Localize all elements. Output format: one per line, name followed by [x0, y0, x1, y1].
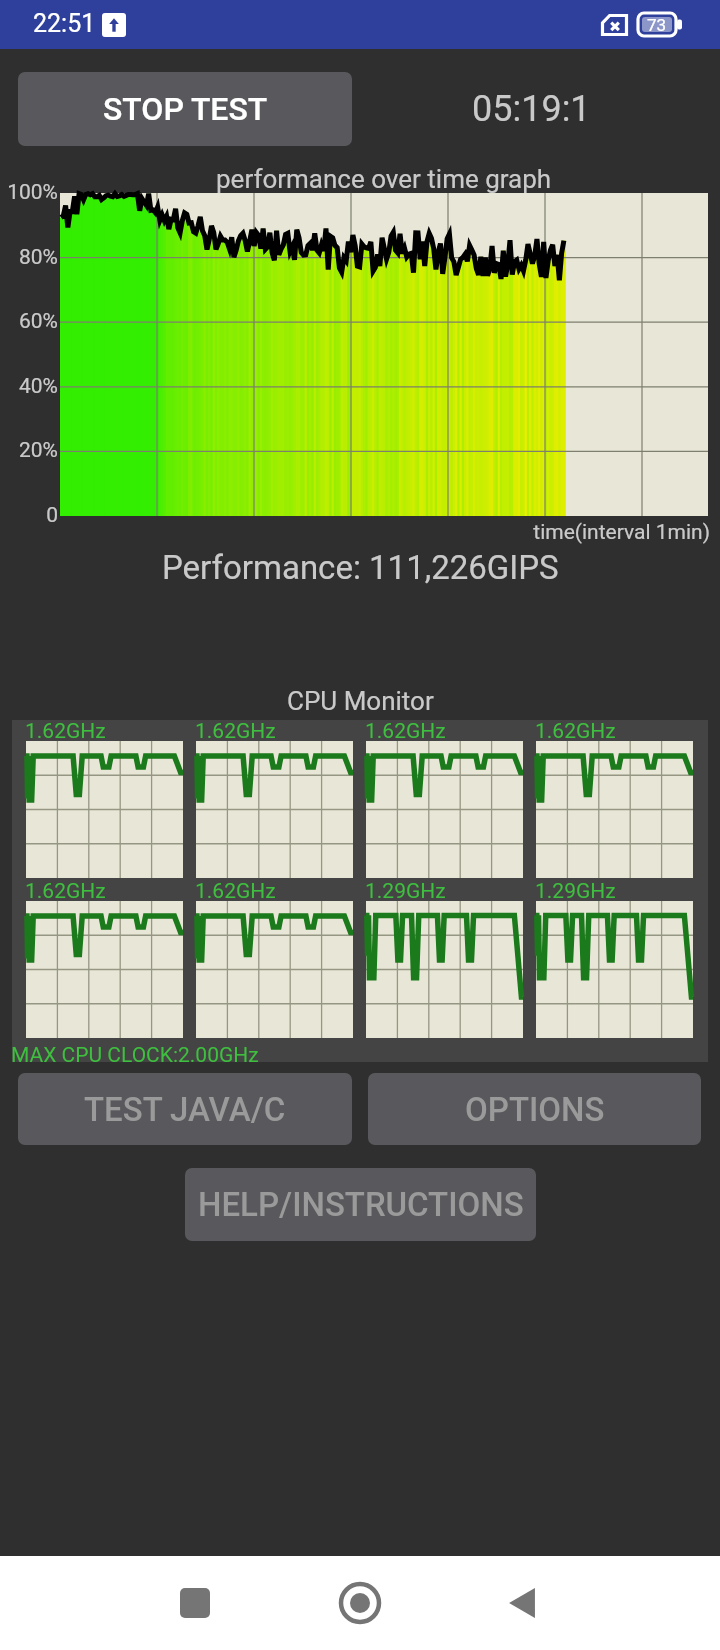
- staticText: 80%: [0, 245, 58, 270]
- button[interactable]: TEST JAVA/C: [18, 1073, 352, 1145]
- button[interactable]: Recents: [167, 1575, 223, 1631]
- staticText: 22:51: [33, 9, 96, 38]
- staticText: 20%: [0, 438, 58, 463]
- staticText: STOP TEST: [103, 90, 268, 128]
- staticText: time(interval 1min): [0, 520, 710, 545]
- staticText: Performance: 111,226GIPS: [162, 548, 559, 587]
- staticText: 1.62GHz: [195, 879, 276, 904]
- staticText: 60%: [0, 309, 58, 334]
- staticText: 1.29GHz: [365, 879, 446, 904]
- staticText: performance over time graph: [216, 164, 552, 194]
- staticText: 1.62GHz: [25, 719, 106, 744]
- staticText: TEST JAVA/C: [84, 1090, 286, 1129]
- button[interactable]: Back: [494, 1575, 550, 1631]
- staticText: 0: [0, 503, 58, 528]
- staticText: 1.62GHz: [195, 719, 276, 744]
- button[interactable]: OPTIONS: [368, 1073, 701, 1145]
- staticText: 1.62GHz: [535, 719, 616, 744]
- button[interactable]: Home: [332, 1575, 388, 1631]
- staticText: CPU Monitor: [287, 686, 434, 716]
- button[interactable]: HELP/INSTRUCTIONS: [185, 1168, 536, 1241]
- staticText: 05:19:1: [472, 88, 591, 130]
- staticText: 1.62GHz: [365, 719, 446, 744]
- staticText: HELP/INSTRUCTIONS: [198, 1185, 524, 1224]
- staticText: 100%: [0, 180, 58, 205]
- staticText: 40%: [0, 374, 58, 399]
- staticText: OPTIONS: [465, 1090, 605, 1129]
- staticText: 73: [647, 15, 667, 35]
- staticText: 1.29GHz: [535, 879, 616, 904]
- button[interactable]: STOP TEST: [18, 72, 352, 146]
- staticText: 1.62GHz: [25, 879, 106, 904]
- staticText: MAX CPU CLOCK:2.00GHz: [11, 1043, 259, 1068]
